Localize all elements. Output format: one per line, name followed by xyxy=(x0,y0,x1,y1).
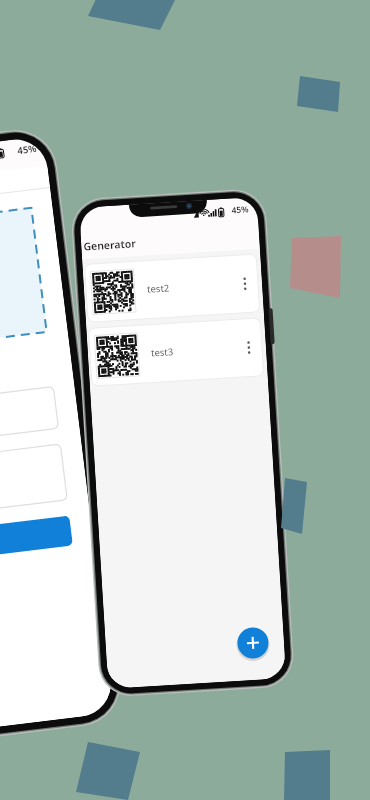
button[interactable]: QR Code Generator app promotional screen… xyxy=(0,0,370,800)
